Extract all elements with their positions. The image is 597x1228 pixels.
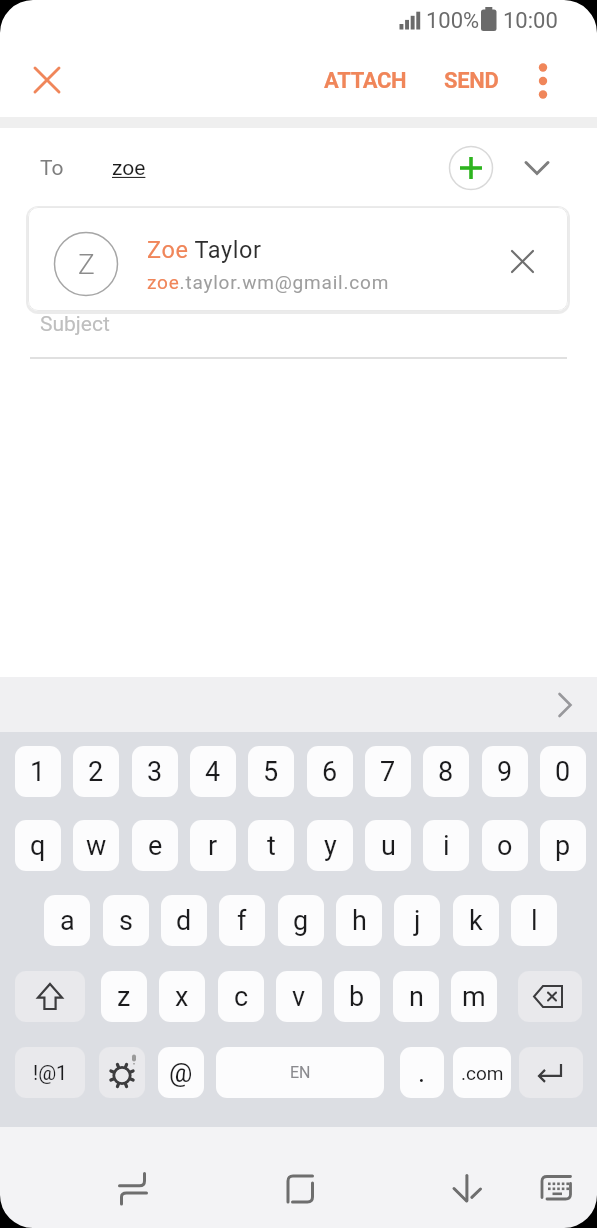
button[interactable]: j [394,895,440,946]
button[interactable]: r [190,820,236,871]
staticText: zoe [112,156,146,181]
staticText: b [349,981,365,1013]
button[interactable]: y [307,820,353,871]
button[interactable]: b [334,971,380,1022]
button[interactable] [546,686,584,724]
button[interactable]: 5 [248,746,294,797]
button[interactable]: @ [158,1047,204,1098]
staticText: c [234,981,249,1013]
button[interactable]: 1 [15,746,61,797]
staticText: SEND [444,68,499,94]
button[interactable] [441,1163,493,1215]
staticText: 0 [555,756,571,788]
button[interactable]: !@1 [15,1047,85,1098]
button[interactable]: SEND [434,62,508,100]
button[interactable]: m [451,971,497,1022]
button[interactable]: ATTACH [313,62,417,100]
button[interactable]: i [423,820,469,871]
staticText: h [352,905,367,937]
button[interactable] [448,145,494,191]
staticText: q [30,830,46,862]
button[interactable]: p [540,820,586,871]
button[interactable] [519,1047,583,1098]
staticText: f [237,905,247,937]
button[interactable]: g [278,895,324,946]
button[interactable] [530,1163,582,1215]
button[interactable]: d [161,895,207,946]
button[interactable] [107,1163,159,1215]
button[interactable]: s [103,895,149,946]
staticText: d [176,905,192,937]
button[interactable]: 3 [132,746,178,797]
staticText: 100% [426,8,480,34]
button[interactable]: 0 [540,746,586,797]
button[interactable]: k [453,895,499,946]
button[interactable] [524,62,562,100]
staticText: .com [461,1062,504,1084]
button[interactable]: h [336,895,382,946]
staticText: 1 [30,756,46,788]
staticText: w [86,830,107,862]
button[interactable] [15,971,85,1022]
button[interactable] [518,971,582,1022]
button[interactable]: 4 [190,746,236,797]
staticText: a [60,905,75,937]
staticText: s [119,905,133,937]
staticText: x [175,981,189,1013]
staticText: 3 [147,756,163,788]
button[interactable]: t [248,820,294,871]
staticText: 2 [88,756,104,788]
staticText: 7 [380,756,396,788]
staticText: 9 [497,756,513,788]
staticText: p [555,830,571,862]
button[interactable]: q [15,820,61,871]
button[interactable]: f [219,895,265,946]
button[interactable]: 6 [307,746,353,797]
button[interactable]: l [511,895,557,946]
staticText: 8 [438,756,454,788]
button[interactable]: c [218,971,264,1022]
staticText: m [462,981,486,1013]
staticText: EN [290,1063,311,1082]
staticText: g [293,905,309,937]
staticText: ATTACH [324,68,407,94]
button[interactable]: a [44,895,90,946]
button[interactable]: n [393,971,439,1022]
staticText: 6 [322,756,338,788]
button[interactable]: 7 [365,746,411,797]
staticText: @ [169,1058,193,1088]
button[interactable]: EN [216,1047,384,1098]
button[interactable]: o [482,820,528,871]
staticText: r [208,830,218,862]
button[interactable] [503,242,541,280]
staticText: o [497,830,513,862]
staticText: Z [78,248,95,281]
button[interactable]: z [101,971,147,1022]
staticText: Subject [40,312,110,337]
staticText: u [381,830,396,862]
staticText: zoe.taylor.wm@gmail.com [147,271,390,293]
button[interactable]: 9 [482,746,528,797]
staticText: 4 [205,756,221,788]
button[interactable]: 8 [423,746,469,797]
button[interactable] [518,149,556,187]
staticText: y [324,830,337,862]
button[interactable]: .com [453,1047,511,1098]
button[interactable]: u [365,820,411,871]
staticText: j [414,905,421,937]
button[interactable]: e [132,820,178,871]
button[interactable]: Z [28,207,568,311]
staticText: To [40,156,64,181]
button[interactable] [274,1163,326,1215]
button[interactable] [28,61,66,99]
staticText: z [117,981,131,1013]
staticText: . [418,1057,426,1089]
staticText: t [267,830,276,862]
button[interactable]: 2 [73,746,119,797]
button[interactable]: v [276,971,322,1022]
button[interactable]: x [159,971,205,1022]
button[interactable]: . [400,1047,444,1098]
button[interactable] [99,1047,145,1098]
button[interactable]: w [73,820,119,871]
staticText: !@1 [33,1061,68,1084]
